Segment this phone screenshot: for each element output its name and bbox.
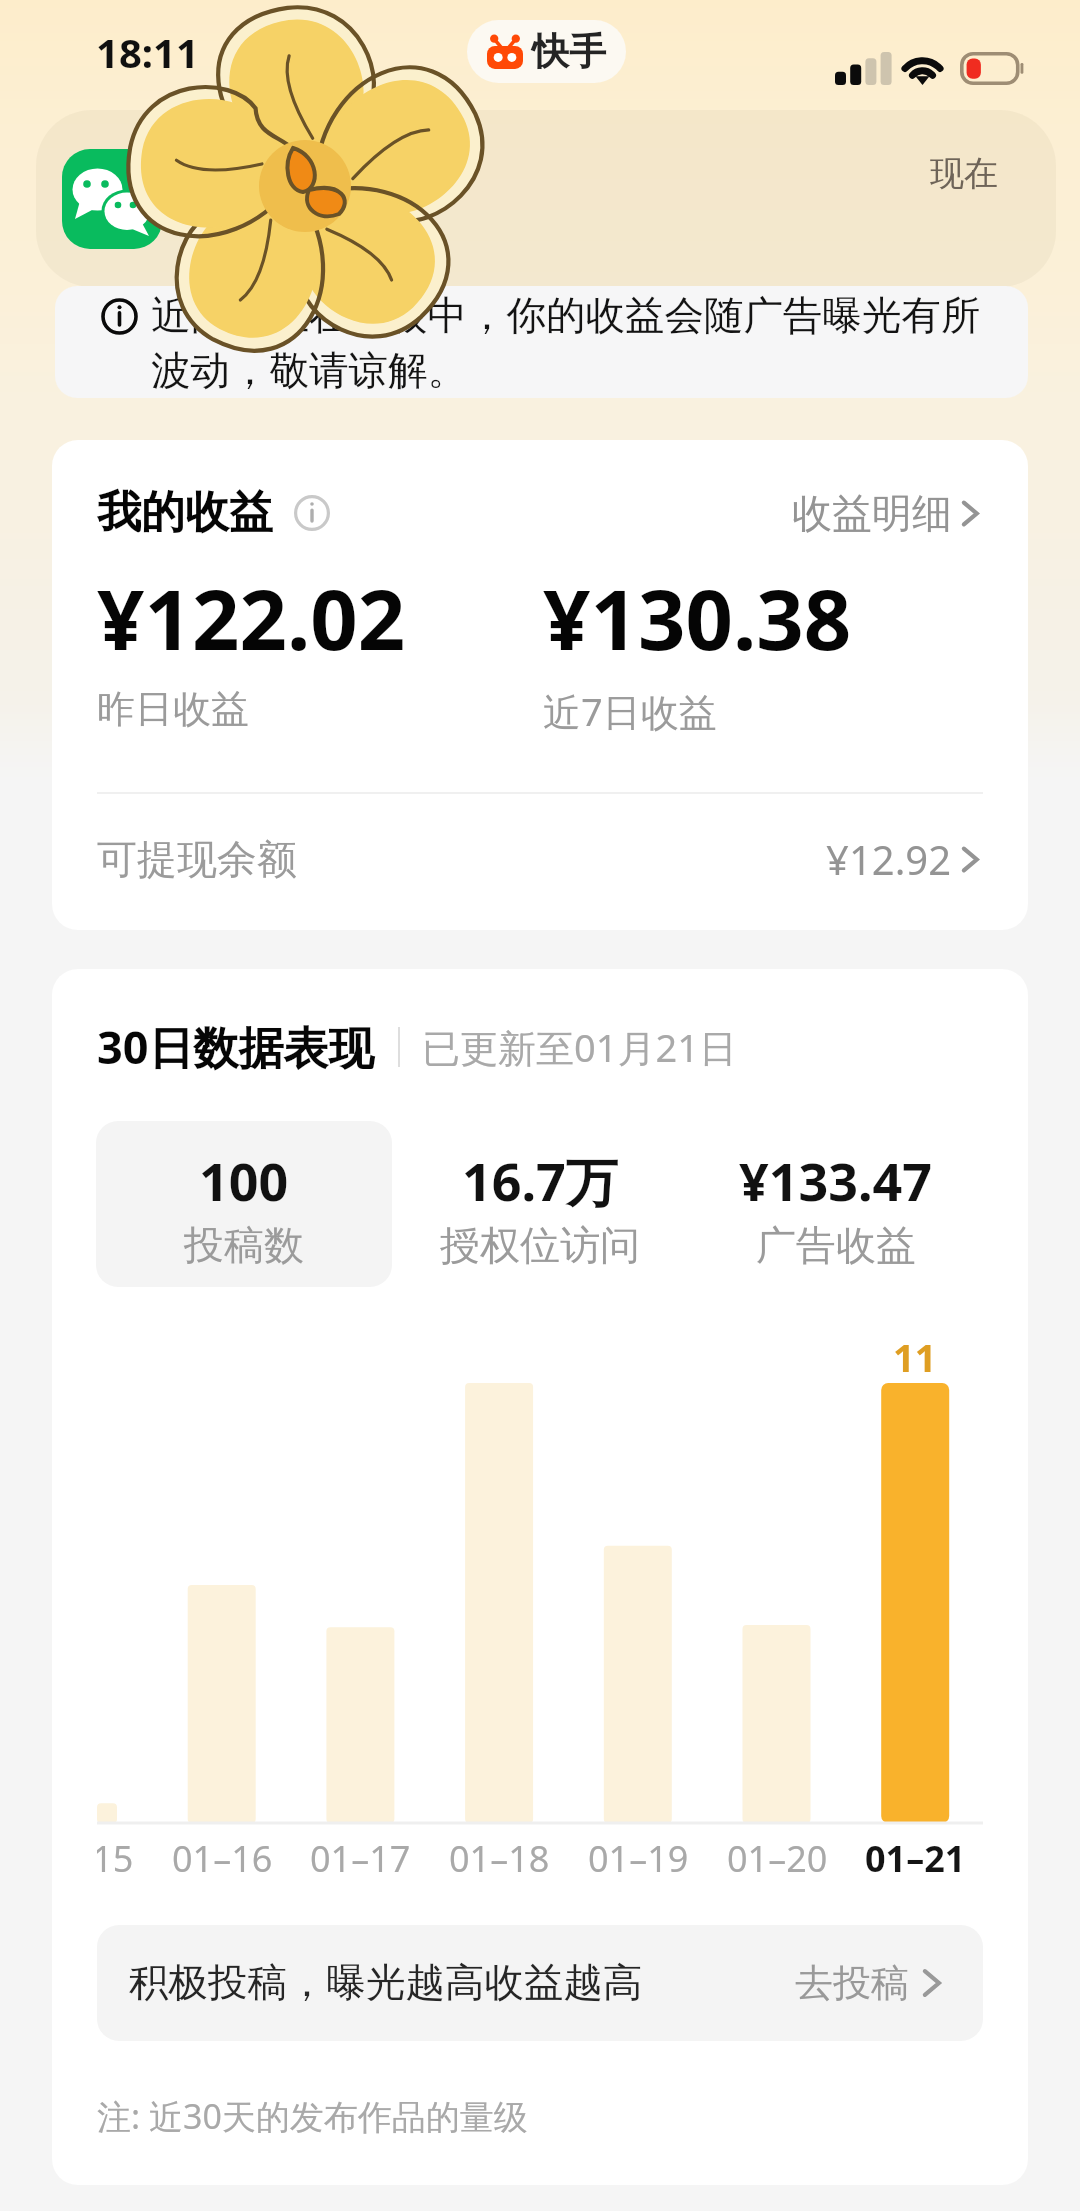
staticText: 11 <box>893 1333 937 1383</box>
staticText: ¥130.38 <box>543 561 852 674</box>
staticText: 积极投稿，曝光越高收益越高 <box>129 1958 643 2008</box>
staticText: 广告收益 <box>756 1220 916 1270</box>
button[interactable]: 积极投稿，曝光越高收益越高 <box>97 1925 983 2041</box>
staticText: 我的收益 <box>97 485 273 540</box>
button[interactable]: Kuaishou <box>467 20 626 83</box>
staticText: 01–18 <box>449 1834 550 1883</box>
staticText: 近7日收益 <box>543 685 717 737</box>
staticText: 30日数据表现 <box>97 1016 374 1077</box>
staticText: 01–15 <box>97 1834 134 1883</box>
staticText: 近两周正在升级中，你的收益会随广告曝光有所波动，敬请谅解。 <box>151 291 991 396</box>
staticText: 去投稿 <box>795 1959 909 2007</box>
button[interactable]: Info <box>294 495 330 531</box>
staticText: 01–20 <box>727 1834 828 1883</box>
staticText: ¥12.92 <box>826 832 952 886</box>
button[interactable]: 现在 <box>36 110 1056 287</box>
staticText: 快手 <box>532 28 606 75</box>
staticText: 01–16 <box>172 1834 273 1883</box>
staticText: 16.7万 <box>462 1145 618 1216</box>
staticText: 已更新至01月21日 <box>422 1021 737 1073</box>
button[interactable]: 可提现余额 <box>52 794 1028 930</box>
staticText: ¥122.02 <box>97 561 406 674</box>
staticText: 01–21 <box>865 1834 966 1883</box>
staticText: 授权位访问 <box>440 1220 640 1270</box>
staticText: 01–19 <box>588 1834 689 1883</box>
staticText: 01–17 <box>310 1834 411 1883</box>
staticText: 现在 <box>930 152 998 195</box>
staticText: 100 <box>199 1145 289 1216</box>
staticText: 可提现余额 <box>97 834 297 884</box>
staticText: 收益明细 <box>792 488 952 538</box>
staticText: 投稿数 <box>184 1220 304 1270</box>
button[interactable]: ¥133.47 <box>688 1121 984 1287</box>
button[interactable]: 100 <box>96 1121 392 1287</box>
button[interactable]: 收益明细 <box>792 488 986 538</box>
staticText: ¥133.47 <box>739 1145 933 1216</box>
button[interactable]: 16.7万 <box>392 1121 688 1287</box>
staticText: 昨日收益 <box>97 685 249 733</box>
staticText: 注: 近30天的发布作品的量级 <box>97 2093 528 2139</box>
staticText: 18:11 <box>96 25 199 79</box>
button[interactable]: 近两周正在升级中，你的收益会随广告曝光有所波动，敬请谅解。 <box>55 286 1028 398</box>
